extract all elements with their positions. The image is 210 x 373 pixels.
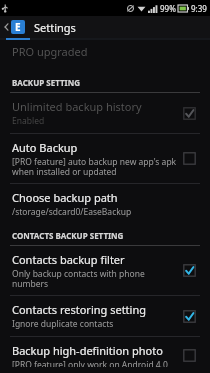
staticText: Backup high-definition photo: [12, 343, 163, 358]
staticText: /storage/sdcard0/EaseBackup: [12, 206, 132, 218]
button[interactable]: Backup high-definition photo: [0, 337, 210, 373]
staticText: BACKUP SETTING: [12, 77, 80, 88]
staticText: 99%: [160, 3, 176, 14]
button[interactable]: Navigate up: [0, 20, 27, 34]
staticText: E: [15, 20, 21, 34]
staticText: Enabled: [12, 115, 45, 127]
button[interactable]: Auto Backup: [0, 134, 210, 183]
button[interactable]: Choose backup path: [0, 184, 210, 224]
staticText: CONTACTS BACKUP SETTING: [12, 230, 124, 241]
staticText: [PRO feature] auto backup new app's apk …: [12, 156, 177, 177]
staticText: Ignore duplicate contacts: [12, 318, 114, 330]
button[interactable]: Contacts backup filter: [0, 246, 210, 295]
staticText: Contacts backup filter: [12, 252, 125, 267]
staticText: Settings: [34, 20, 76, 35]
button[interactable]: Unlimited backup history: [0, 93, 210, 133]
staticText: Unlimited backup history: [12, 99, 142, 114]
button[interactable]: PRO upgraded: [0, 40, 210, 62]
staticText: Auto Backup: [12, 140, 78, 155]
staticText: 9:39: [191, 3, 207, 14]
staticText: PRO upgraded: [12, 44, 88, 59]
staticText: Contacts restoring setting: [12, 302, 146, 317]
staticText: Choose backup path: [12, 190, 118, 205]
staticText: Only backup contacts with phone numbers: [12, 268, 177, 289]
staticText: [PRO feature] only work on Android 4.0 a…: [12, 359, 177, 367]
button[interactable]: Contacts restoring setting: [0, 296, 210, 336]
